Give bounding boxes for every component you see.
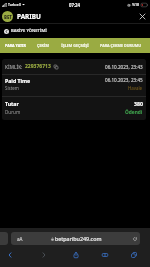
- button[interactable]: Bookmarks: [98, 248, 111, 261]
- button[interactable]: Copy: [53, 64, 58, 69]
- button[interactable]: Share: [69, 248, 82, 261]
- staticText: betparibu249.com: [55, 235, 102, 242]
- button[interactable]: Bookmarks: [98, 248, 111, 261]
- button[interactable]: BAKİYE YÖNETİMİ: [2, 24, 150, 38]
- staticText: PARA YATIR: [5, 43, 26, 48]
- button[interactable]: Close: [138, 12, 147, 21]
- staticText: PARIBU: [17, 12, 41, 21]
- staticText: 229376713: [25, 63, 51, 70]
- staticText: Tutar: [5, 100, 19, 106]
- staticText: BAKİYE YÖNETİMİ: [11, 28, 47, 34]
- button[interactable]: İŞLEM GEÇMİŞİ: [55, 38, 95, 53]
- staticText: Durum: [5, 109, 21, 115]
- staticText: aA: [17, 236, 23, 242]
- button[interactable]: BET: [2, 11, 41, 22]
- staticText: Sistem: [5, 85, 19, 91]
- staticText: 06.10.2023, 23:45: [105, 77, 143, 83]
- button[interactable]: aA: [11, 232, 140, 245]
- staticText: %18: [132, 2, 140, 7]
- button[interactable]: PARA ÇEKME DURUMU: [95, 38, 146, 53]
- button[interactable]: Forward: [37, 248, 50, 261]
- button[interactable]: Back: [3, 248, 16, 261]
- staticText: 07:24: [69, 2, 81, 8]
- button[interactable]: Reload: [131, 235, 138, 242]
- staticText: ÇEKİM: [37, 43, 49, 48]
- staticText: Ödendi: [125, 109, 143, 115]
- button[interactable]: Tabs: [127, 248, 140, 261]
- staticText: Turkcell: [8, 2, 21, 7]
- button[interactable]: PARA YATIR: [0, 38, 31, 53]
- staticText: 380: [134, 100, 143, 106]
- staticText: KİMLİK:: [5, 64, 23, 70]
- staticText: Havale: [128, 85, 143, 91]
- staticText: İŞLEM GEÇMİŞİ: [61, 43, 89, 48]
- button[interactable]: Tabs: [127, 248, 140, 261]
- staticText: PARA ÇEKME DURUMU: [100, 43, 141, 48]
- staticText: Paid Time: [5, 77, 31, 83]
- staticText: 06.10.2023, 23:43: [105, 64, 143, 70]
- staticText: BET: [4, 14, 12, 20]
- button[interactable]: ÇEKİM: [31, 38, 55, 53]
